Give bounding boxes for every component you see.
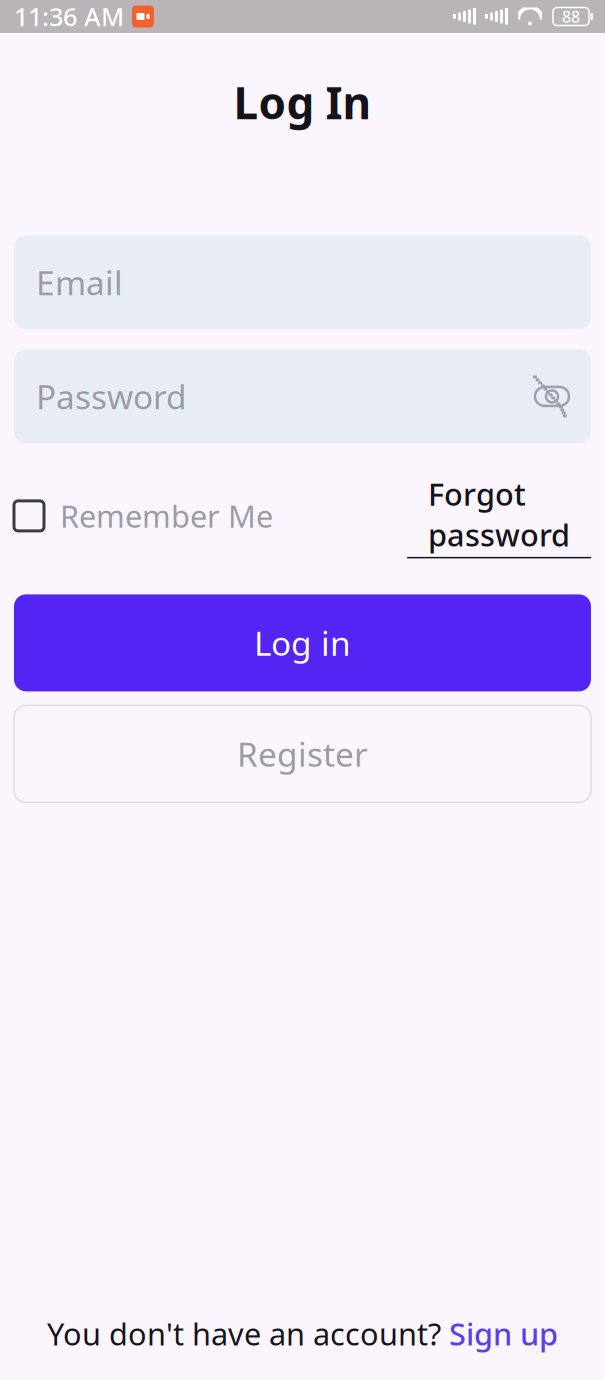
staticText: 11:36 AM [14,0,124,33]
staticText: Log in [254,621,351,665]
staticText: Email [36,260,123,305]
staticText: Remember Me [60,495,273,536]
button[interactable]: Register [14,705,591,802]
staticText: Log In [233,73,371,131]
staticText: Forgot password [428,473,570,555]
staticText: Password [36,374,187,419]
button[interactable]: Log in [14,594,591,691]
button[interactable]: Sign up [449,1313,558,1354]
staticText: You don't have an account? [47,1313,449,1354]
button[interactable]: Show password [529,373,575,419]
staticText: Sign up [449,1313,558,1354]
button[interactable]: Forgot password [407,465,591,566]
button[interactable]: Remember Me [14,487,273,544]
staticText: 88 [562,6,580,27]
staticText: Register [237,732,368,776]
